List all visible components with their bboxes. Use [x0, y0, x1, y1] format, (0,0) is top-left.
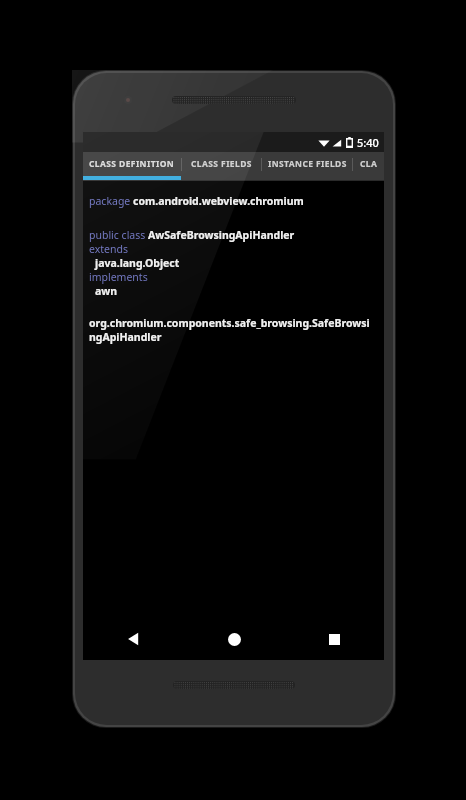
staticText: CLASS DEFINITION: [89, 158, 175, 170]
staticText: awn: [95, 284, 118, 298]
staticText: package com.android.webview.chromium: [89, 194, 304, 208]
button[interactable]: Recent apps: [284, 618, 384, 660]
staticText: implements: [89, 270, 148, 284]
button[interactable]: INSTANCE FIELDS: [262, 152, 352, 176]
staticText: extends: [89, 242, 128, 256]
staticText: CLASS FIELDS: [191, 158, 252, 170]
button[interactable]: CLASS DEFINITION: [83, 152, 181, 176]
button[interactable]: CLA: [353, 152, 384, 176]
staticText: CLA: [360, 158, 378, 170]
staticText: org.chromium.components.safe_browsing.Sa…: [89, 316, 376, 344]
staticText: 5:40: [357, 135, 379, 150]
staticText: INSTANCE FIELDS: [268, 158, 347, 170]
button[interactable]: CLASS FIELDS: [182, 152, 261, 176]
button[interactable]: Home: [184, 618, 284, 660]
staticText: java.lang.Object: [95, 256, 180, 270]
staticText: public class AwSafeBrowsingApiHandler: [89, 228, 295, 242]
button[interactable]: Back: [83, 618, 184, 660]
